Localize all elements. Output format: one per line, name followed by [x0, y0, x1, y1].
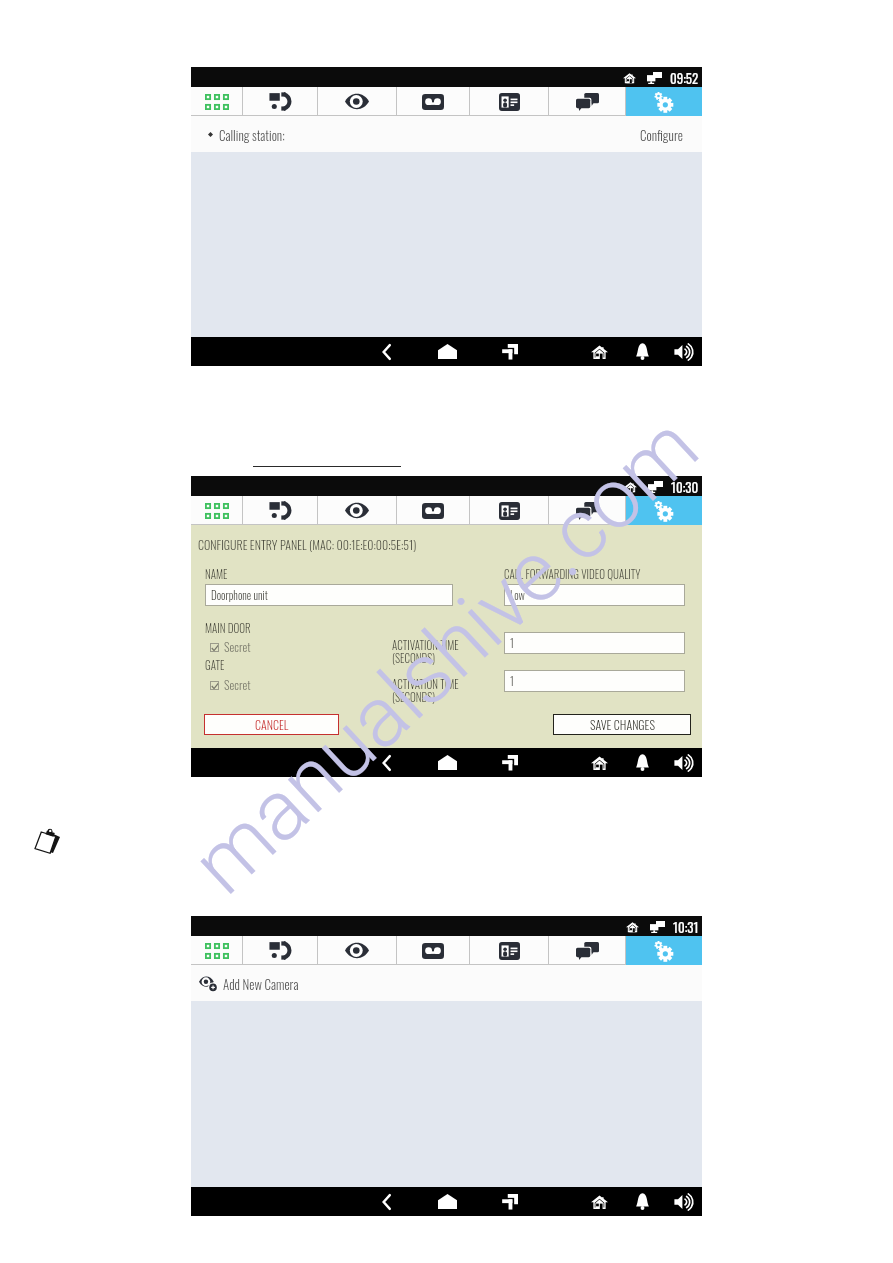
staticText: CALL FORWARDING VIDEO QUALITY	[504, 566, 641, 582]
button[interactable]: Notifications	[627, 1187, 657, 1216]
button[interactable]: Settings	[626, 496, 702, 525]
button[interactable]: Secret	[210, 638, 251, 656]
staticText: SAVE CHANGES	[590, 716, 655, 734]
button[interactable]: Notifications	[627, 337, 657, 366]
button[interactable]: App home	[584, 748, 614, 777]
button[interactable]: Cameras	[318, 496, 396, 525]
button[interactable]: Voicemail	[397, 87, 469, 116]
button[interactable]: Contacts	[470, 87, 548, 116]
button[interactable]: Volume	[669, 1187, 699, 1216]
button[interactable]: 1	[504, 670, 685, 692]
button[interactable]: Home	[432, 1187, 462, 1216]
staticText: Calling station:	[219, 125, 285, 144]
button[interactable]: Notifications	[627, 748, 657, 777]
staticText: NAME	[205, 566, 228, 582]
staticText: 10:30	[671, 477, 699, 496]
button[interactable]: Cameras	[318, 87, 396, 116]
staticText: 10:31	[673, 917, 699, 936]
staticText: CONFIGURE ENTRY PANEL (MAC: 00:1E:E0:00:…	[198, 536, 417, 554]
button[interactable]: Home	[432, 748, 462, 777]
button[interactable]: Recents	[495, 337, 525, 366]
button[interactable]: Keypad	[191, 87, 242, 116]
button[interactable]: Cameras	[318, 936, 396, 965]
button[interactable]: Volume	[669, 748, 699, 777]
button[interactable]: Calls	[243, 87, 317, 116]
staticText: Secret	[224, 638, 251, 656]
button[interactable]: Messages	[549, 496, 625, 525]
button[interactable]: Messages	[549, 87, 625, 116]
staticText: MAIN DOOR	[205, 620, 251, 636]
button[interactable]: Back	[371, 748, 401, 777]
staticText: ACTIVATION TIME (SECONDS)	[392, 676, 459, 706]
button[interactable]: Doorphone unit	[205, 584, 453, 606]
button[interactable]: CANCEL	[204, 714, 339, 735]
staticText: 09:52	[670, 68, 699, 87]
button[interactable]: Configure	[638, 122, 685, 147]
button[interactable]: Low	[504, 584, 685, 606]
button[interactable]: 1	[504, 632, 685, 654]
staticText: 1	[510, 673, 514, 689]
button[interactable]: Volume	[669, 337, 699, 366]
button[interactable]: Back	[371, 1187, 401, 1216]
button[interactable]: Voicemail	[397, 936, 469, 965]
button[interactable]: Contacts	[470, 936, 548, 965]
button[interactable]: App home	[584, 1187, 614, 1216]
staticText: Add New Camera	[223, 974, 299, 993]
staticText: GATE	[205, 657, 225, 673]
staticText: manualshive.com	[84, 315, 805, 995]
button[interactable]: Recents	[495, 1187, 525, 1216]
button[interactable]: Home	[432, 337, 462, 366]
staticText: CANCEL	[255, 716, 289, 734]
staticText: ACTIVATION TIME (SECONDS)	[392, 637, 459, 667]
button[interactable]: Calls	[243, 496, 317, 525]
button[interactable]: Add New Camera	[197, 971, 301, 996]
button[interactable]: Secret	[210, 676, 251, 694]
button[interactable]: Settings	[626, 936, 702, 965]
button[interactable]: Calls	[243, 936, 317, 965]
staticText: 1	[510, 635, 514, 651]
staticText: Secret	[224, 676, 251, 694]
button[interactable]: Recents	[495, 748, 525, 777]
staticText: Low	[510, 587, 525, 603]
button[interactable]: Keypad	[191, 496, 242, 525]
button[interactable]: App home	[584, 337, 614, 366]
button[interactable]: Messages	[549, 936, 625, 965]
button[interactable]: Settings	[626, 87, 702, 116]
staticText: Doorphone unit	[211, 587, 268, 603]
button[interactable]: Back	[371, 337, 401, 366]
button[interactable]: SAVE CHANGES	[553, 714, 691, 735]
button[interactable]: Keypad	[191, 936, 242, 965]
staticText: Configure	[640, 125, 683, 144]
button[interactable]: Voicemail	[397, 496, 469, 525]
button[interactable]: Contacts	[470, 496, 548, 525]
